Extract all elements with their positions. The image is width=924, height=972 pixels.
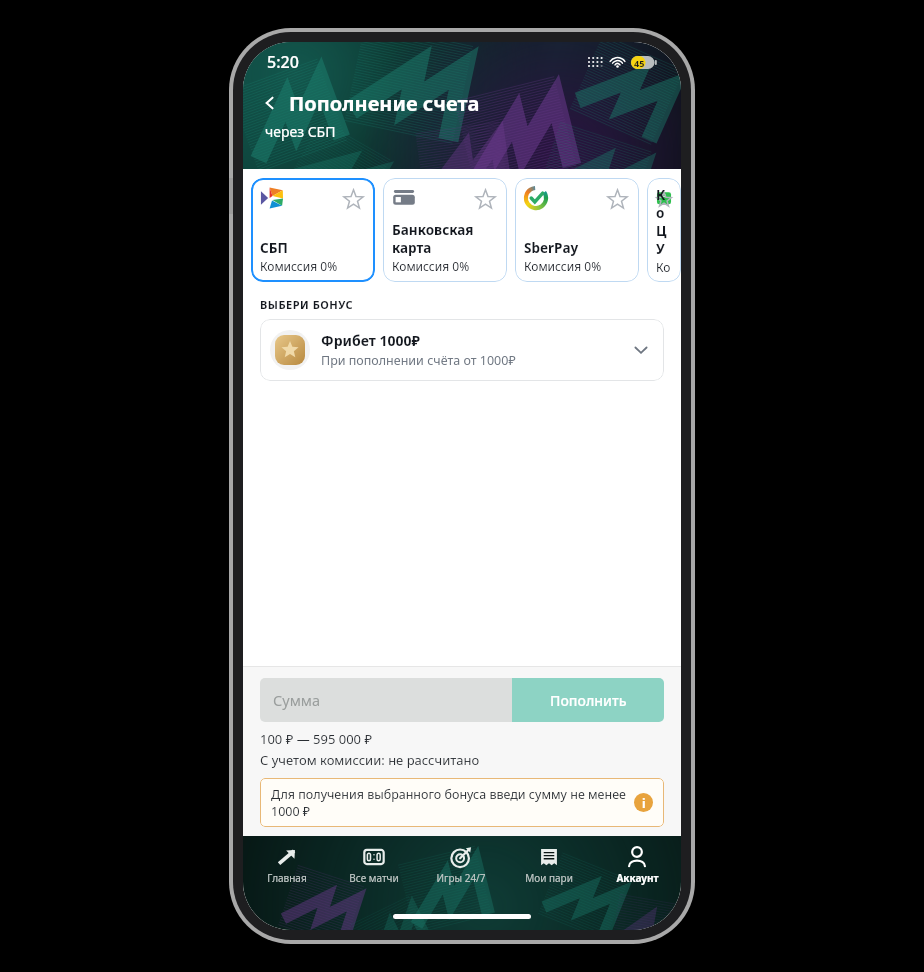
button[interactable]: Favorite: [251, 178, 375, 282]
staticText: Фрибет 1000₽: [321, 331, 420, 350]
staticText: Комиссия 0%: [656, 259, 672, 274]
staticText: Для получения выбранного бонуса введи су…: [271, 786, 626, 819]
staticText: СБП: [260, 239, 288, 257]
button[interactable]: Пополнить: [512, 678, 664, 722]
staticText: SberPay: [524, 239, 579, 257]
staticText: Сумма: [273, 690, 320, 710]
button[interactable]: Сумма: [260, 678, 512, 722]
button[interactable]: Favorite: [340, 186, 366, 212]
button[interactable]: Favorite: [515, 178, 639, 282]
button[interactable]: Favorite: [647, 178, 681, 282]
button[interactable]: Главная: [243, 836, 330, 894]
staticText: Комиссия 0%: [524, 258, 602, 274]
staticText: Комиссия 0%: [392, 258, 470, 274]
staticText: Комиссия 0%: [260, 258, 338, 274]
staticText: При пополнении счёта от 1000₽: [321, 352, 516, 369]
button[interactable]: Favorite: [383, 178, 507, 282]
button[interactable]: Favorite: [604, 186, 630, 212]
staticText: С учетом комиссии: не рассчитано: [260, 751, 480, 769]
staticText: Пополнить: [550, 691, 627, 710]
staticText: Банковская: [392, 221, 474, 239]
staticText: Главная: [267, 871, 307, 885]
staticText: Игры 24/7: [436, 871, 486, 885]
button[interactable]: Аккаунт: [593, 836, 681, 894]
button[interactable]: Все матчи: [330, 836, 417, 894]
staticText: ВЫБЕРИ БОНУС: [260, 297, 354, 312]
staticText: карта: [392, 239, 432, 257]
staticText: 5:20: [267, 51, 299, 73]
staticText: Ко: [656, 186, 672, 222]
staticText: 100 ₽ — 595 000 ₽: [260, 730, 372, 748]
staticText: ЦУ: [656, 222, 672, 258]
staticText: Пополнение счета: [289, 90, 480, 117]
staticText: Мои пари: [525, 871, 573, 885]
button[interactable]: Favorite: [472, 186, 498, 212]
button[interactable]: Мои пари: [505, 836, 593, 894]
staticText: Аккаунт: [616, 871, 659, 885]
staticText: через СБП: [265, 122, 336, 141]
staticText: i: [642, 795, 646, 811]
other: Expand: [628, 337, 654, 363]
button[interactable]: Фрибет 1000₽: [260, 319, 664, 381]
staticText: 45: [634, 57, 645, 69]
staticText: Все матчи: [349, 871, 399, 885]
button[interactable]: Игры 24/7: [417, 836, 505, 894]
button[interactable]: Favorite: [656, 186, 672, 212]
button[interactable]: Back: [255, 88, 285, 118]
